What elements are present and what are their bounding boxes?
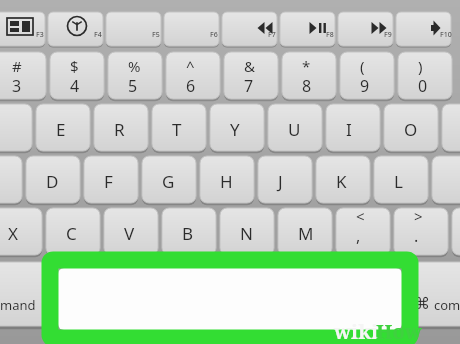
staticText: F4 bbox=[94, 30, 102, 40]
staticText: 6 bbox=[186, 75, 196, 97]
staticText: N bbox=[240, 222, 253, 245]
staticText: mand bbox=[0, 296, 36, 314]
staticText: 9 bbox=[360, 75, 370, 97]
staticText: > bbox=[414, 206, 423, 226]
staticText: < bbox=[356, 206, 365, 226]
staticText: 0 bbox=[418, 75, 428, 97]
staticText: F7 bbox=[268, 30, 276, 40]
staticText: 5 bbox=[128, 75, 138, 97]
staticText: M bbox=[298, 222, 314, 245]
staticText: C bbox=[66, 222, 77, 245]
staticText: U bbox=[288, 118, 301, 141]
staticText: D bbox=[46, 170, 59, 193]
staticText: & bbox=[244, 56, 255, 76]
staticText: How bbox=[376, 318, 422, 344]
staticText: ) bbox=[418, 56, 423, 76]
staticText: comm bbox=[434, 296, 460, 314]
staticText: # bbox=[12, 56, 22, 76]
staticText: . bbox=[414, 225, 419, 247]
staticText: G bbox=[162, 170, 175, 193]
staticText: 4 bbox=[70, 75, 80, 97]
staticText: R bbox=[114, 118, 125, 141]
staticText: F10 bbox=[440, 30, 452, 40]
staticText: F5 bbox=[152, 30, 160, 40]
staticText: , bbox=[356, 225, 361, 247]
staticText: 8 bbox=[302, 75, 312, 97]
staticText: H bbox=[220, 170, 233, 193]
staticText: B bbox=[182, 222, 194, 245]
staticText: V bbox=[124, 222, 135, 245]
staticText: X bbox=[8, 222, 18, 245]
staticText: 7 bbox=[244, 75, 254, 97]
staticText: F3 bbox=[36, 30, 44, 40]
staticText: ⌘ bbox=[414, 294, 430, 313]
staticText: ^ bbox=[186, 56, 195, 76]
staticText: 3 bbox=[12, 75, 22, 97]
staticText: F6 bbox=[210, 30, 218, 40]
staticText: O bbox=[404, 118, 418, 141]
staticText: F8 bbox=[326, 30, 334, 40]
staticText: K bbox=[336, 170, 347, 193]
staticText: F bbox=[104, 170, 113, 193]
staticText: E bbox=[56, 118, 66, 141]
staticText: T bbox=[172, 118, 182, 141]
staticText: L bbox=[394, 170, 403, 193]
staticText: I bbox=[346, 118, 352, 141]
staticText: ( bbox=[360, 56, 365, 76]
staticText: F9 bbox=[384, 30, 392, 40]
staticText: % bbox=[128, 56, 141, 76]
staticText: $ bbox=[70, 56, 79, 76]
staticText: J bbox=[278, 170, 283, 193]
staticText: Y bbox=[230, 118, 240, 141]
staticText: * bbox=[302, 56, 311, 76]
button[interactable]: Spacebar highlighted bbox=[50, 260, 410, 338]
staticText: wiki bbox=[334, 318, 378, 344]
